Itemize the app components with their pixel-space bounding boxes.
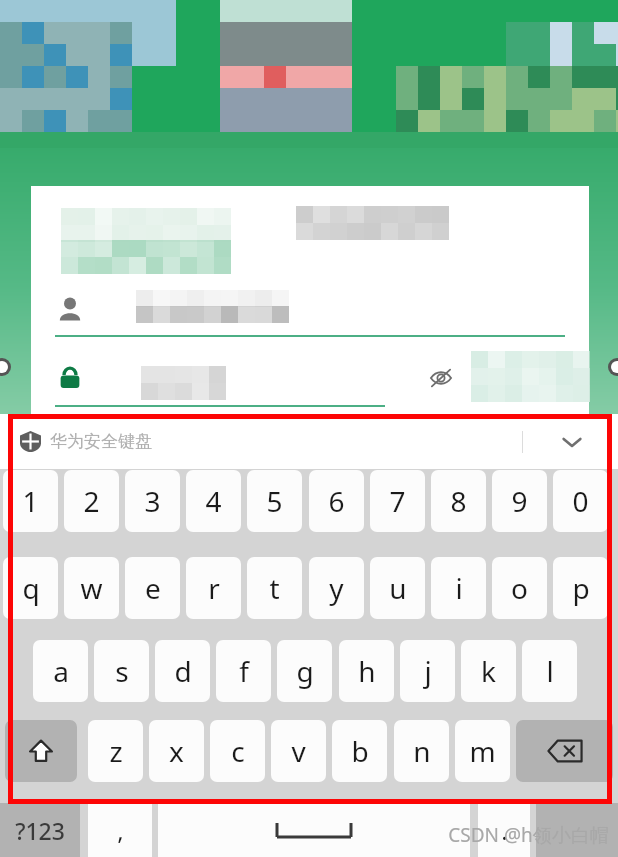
staticText: x	[169, 732, 184, 770]
button[interactable]: 8	[431, 470, 486, 532]
button[interactable]: s	[94, 640, 149, 702]
staticText: 2	[83, 482, 100, 520]
button[interactable]: ,	[88, 803, 152, 857]
button[interactable]: f	[216, 640, 271, 702]
button[interactable]: o	[492, 557, 547, 619]
staticText: g	[296, 652, 314, 690]
button[interactable]: q	[3, 557, 58, 619]
button[interactable]: Space	[158, 803, 470, 857]
button[interactable]: j	[400, 640, 455, 702]
staticText: 5	[266, 482, 283, 520]
button[interactable]: u	[370, 557, 425, 619]
staticText: t	[269, 569, 280, 607]
staticText: p	[572, 569, 590, 607]
button[interactable]: 6	[309, 470, 364, 532]
staticText: r	[208, 569, 220, 607]
button[interactable]: y	[309, 557, 364, 619]
staticText: n	[413, 732, 431, 770]
staticText: 华为安全键盘	[50, 431, 152, 452]
button[interactable]: t	[247, 557, 302, 619]
button[interactable]: v	[271, 720, 326, 782]
staticText: f	[239, 652, 249, 690]
button[interactable]: 0	[553, 470, 608, 532]
button[interactable]: r	[186, 557, 241, 619]
staticText: 6	[328, 482, 345, 520]
staticText: j	[424, 652, 432, 690]
staticText: .	[501, 814, 508, 847]
staticText: l	[546, 652, 554, 690]
button[interactable]: m	[455, 720, 510, 782]
button[interactable]: b	[332, 720, 387, 782]
button[interactable]: 9	[492, 470, 547, 532]
button[interactable]: 5	[247, 470, 302, 532]
staticText: ,	[117, 814, 124, 847]
button[interactable]: ?123	[0, 803, 80, 857]
button[interactable]: Toggle password visibility	[429, 366, 453, 390]
staticText: m	[469, 732, 496, 770]
button[interactable]: x	[149, 720, 204, 782]
staticText: w	[80, 569, 103, 607]
button[interactable]: z	[88, 720, 143, 782]
button[interactable]: c	[210, 720, 265, 782]
staticText: a	[53, 652, 69, 690]
staticText: CSDN @h领小白帽	[448, 822, 609, 848]
button[interactable]: Collapse keyboard	[548, 418, 596, 466]
button[interactable]: k	[461, 640, 516, 702]
staticText: z	[109, 732, 123, 770]
staticText: 4	[205, 482, 222, 520]
button[interactable]: l	[522, 640, 577, 702]
button[interactable]: 4	[186, 470, 241, 532]
button[interactable]: g	[277, 640, 332, 702]
staticText: h	[358, 652, 376, 690]
staticText: 7	[389, 482, 406, 520]
button[interactable]: 3	[125, 470, 180, 532]
staticText: b	[351, 732, 369, 770]
button[interactable]: i	[431, 557, 486, 619]
button[interactable]: .	[478, 803, 530, 857]
button[interactable]: 1	[3, 470, 58, 532]
button[interactable]: w	[64, 557, 119, 619]
button[interactable]: Backspace	[516, 720, 613, 782]
button[interactable]: d	[155, 640, 210, 702]
button[interactable]: h	[339, 640, 394, 702]
button[interactable]: a	[33, 640, 88, 702]
button[interactable]: p	[553, 557, 608, 619]
button[interactable]: n	[394, 720, 449, 782]
staticText: 3	[144, 482, 161, 520]
button[interactable]: Shift	[5, 720, 77, 782]
staticText: o	[511, 569, 528, 607]
staticText: c	[231, 732, 245, 770]
staticText: ?123	[15, 815, 65, 846]
staticText: 8	[450, 482, 467, 520]
staticText: e	[145, 569, 161, 607]
staticText: s	[115, 652, 129, 690]
button[interactable]: Enter	[536, 803, 618, 857]
staticText: y	[329, 569, 344, 607]
staticText: q	[22, 569, 40, 607]
button[interactable]: 2	[64, 470, 119, 532]
staticText: 1	[22, 482, 39, 520]
staticText: k	[481, 652, 496, 690]
staticText: v	[291, 732, 306, 770]
button[interactable]: 华为安全键盘	[0, 414, 618, 469]
button[interactable]: e	[125, 557, 180, 619]
staticText: i	[455, 569, 463, 607]
staticText: 9	[511, 482, 528, 520]
staticText: d	[174, 652, 192, 690]
staticText: 0	[572, 482, 589, 520]
button[interactable]: 7	[370, 470, 425, 532]
staticText: u	[389, 569, 407, 607]
